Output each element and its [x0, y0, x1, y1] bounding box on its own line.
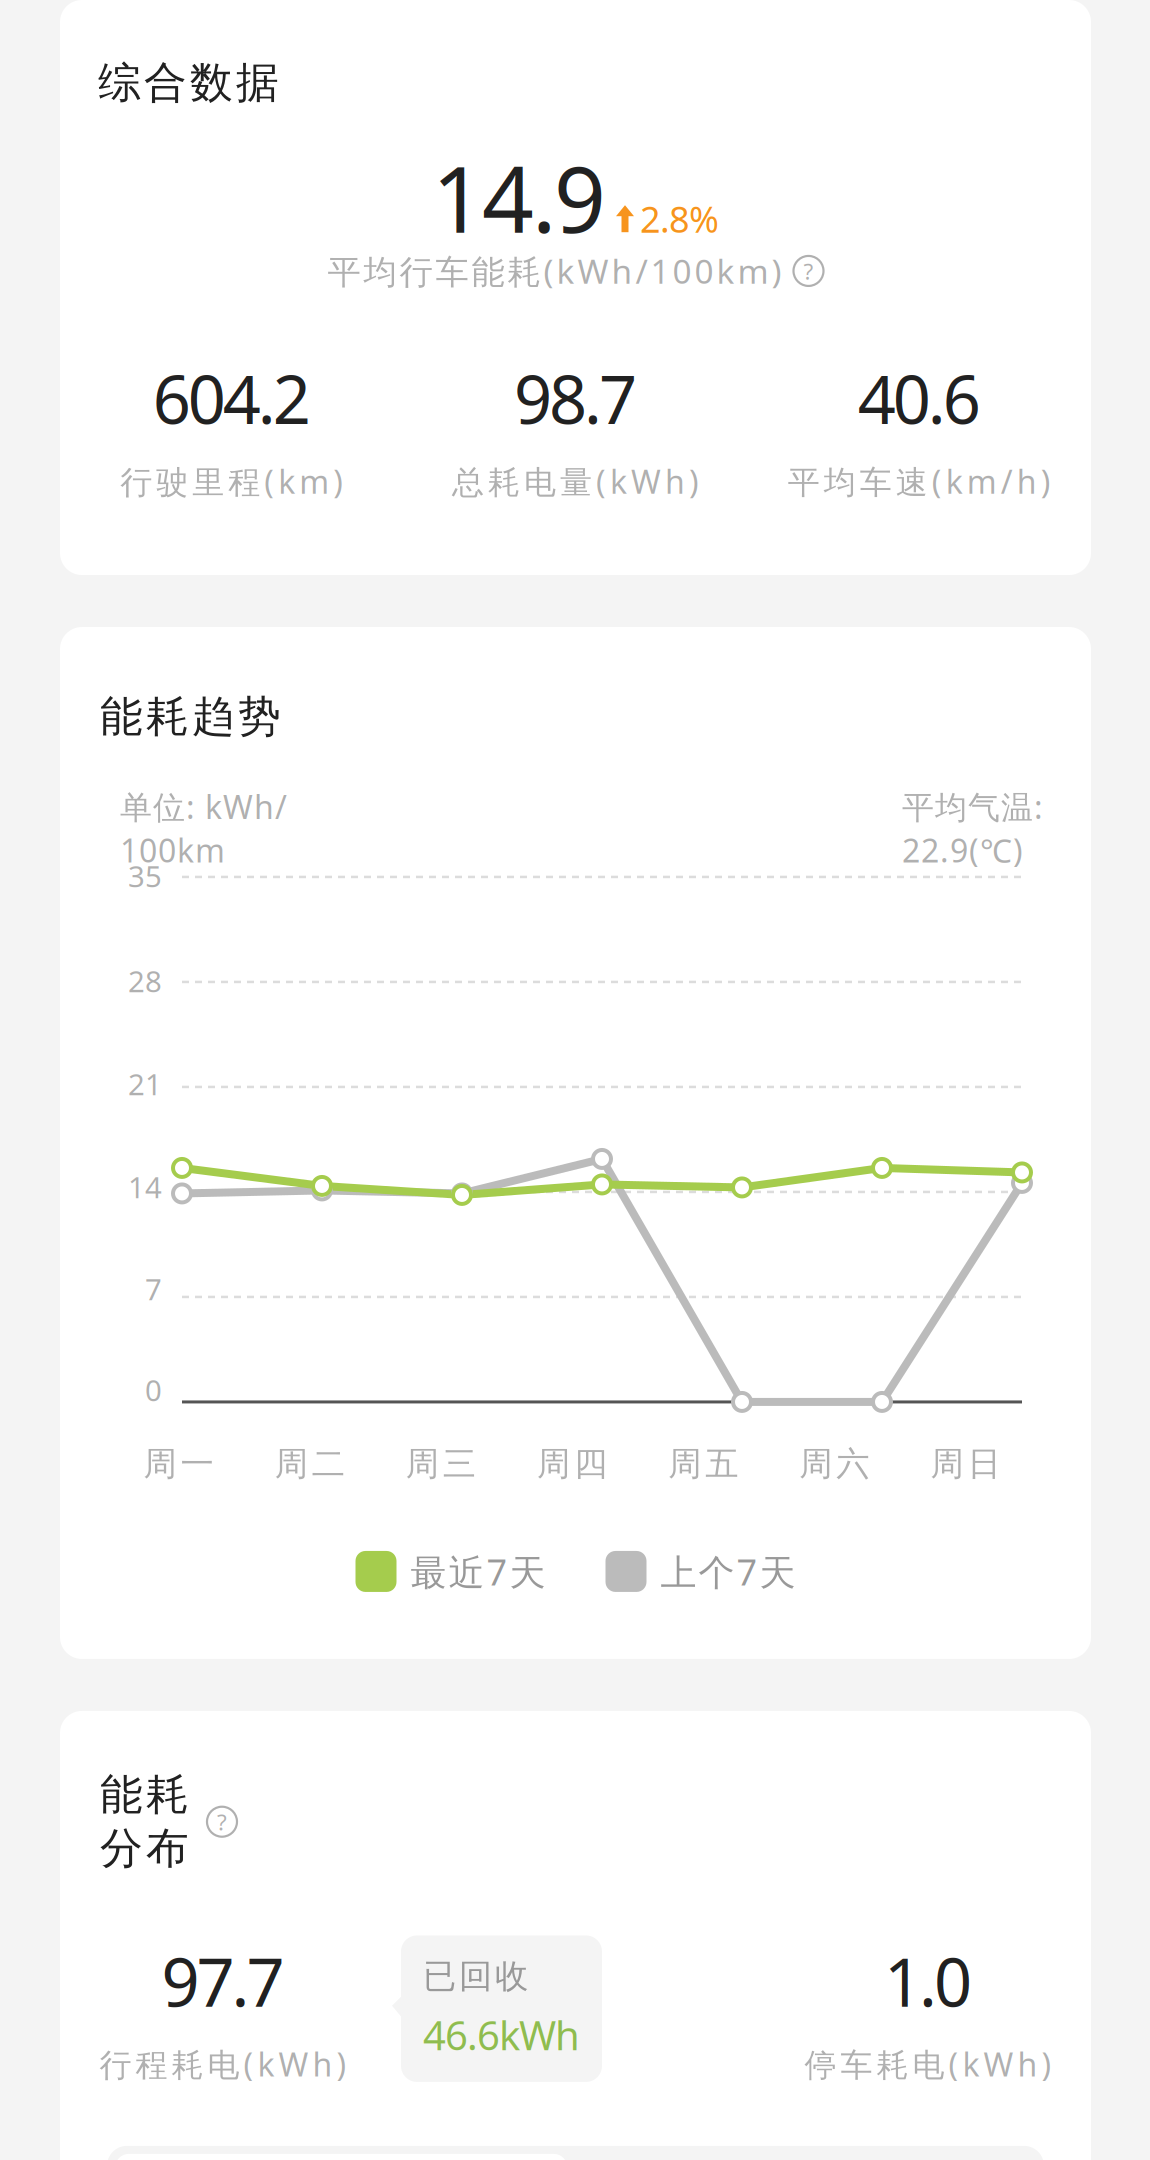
- button[interactable]: 上个7天: [605, 1547, 795, 1596]
- staticText: 行驶里程(km): [120, 459, 343, 503]
- staticText: ?: [217, 1806, 227, 1837]
- staticText: 2.8%: [640, 194, 719, 243]
- staticText: 已回收: [423, 1955, 528, 1997]
- staticText: 40.6: [858, 353, 981, 443]
- staticText: 21: [128, 1064, 162, 1104]
- staticText: ?: [803, 256, 813, 286]
- staticText: 周五: [668, 1443, 738, 1485]
- staticText: 停车耗电(kWh): [804, 2042, 1051, 2086]
- staticText: 周六: [799, 1443, 869, 1485]
- staticText: 周一: [144, 1443, 214, 1485]
- staticText: 28: [128, 961, 162, 1001]
- button[interactable]: 能耗分布: [100, 1768, 283, 1875]
- staticText: 35: [128, 856, 162, 896]
- button[interactable]: 平均行车能耗(kWh/100km): [327, 248, 823, 294]
- staticText: 最近7天: [410, 1547, 545, 1596]
- staticText: 能耗分布: [100, 1768, 189, 1875]
- staticText: 周日: [930, 1443, 1000, 1485]
- button[interactable]: 最近7天: [355, 1547, 545, 1596]
- staticText: 上个7天: [660, 1547, 795, 1596]
- staticText: 总耗电量(kWh): [452, 459, 699, 503]
- staticText: 行程耗电(kWh): [99, 2042, 346, 2086]
- staticText: 综合数据: [98, 56, 279, 110]
- button[interactable]: 行程: [107, 2146, 575, 2160]
- staticText: 周二: [275, 1443, 345, 1485]
- staticText: 单位: kWh/100km: [120, 785, 287, 872]
- staticText: 14.9: [432, 136, 606, 259]
- staticText: 平均行车能耗(kWh/100km): [327, 248, 781, 294]
- staticText: 97.7: [161, 1935, 284, 2026]
- staticText: 平均气温: 22.9(℃): [902, 785, 1043, 872]
- staticText: 14: [128, 1167, 162, 1207]
- staticText: 0: [145, 1370, 162, 1410]
- staticText: 7: [145, 1269, 162, 1309]
- staticText: 604.2: [153, 353, 311, 443]
- staticText: 1.0: [884, 1935, 972, 2026]
- staticText: 46.6kWh: [423, 2007, 580, 2062]
- staticText: 平均车速(km/h): [788, 459, 1051, 503]
- staticText: 98.7: [514, 353, 637, 443]
- staticText: 能耗趋势: [100, 690, 281, 744]
- staticText: 周四: [537, 1443, 607, 1485]
- staticText: 周三: [406, 1443, 476, 1485]
